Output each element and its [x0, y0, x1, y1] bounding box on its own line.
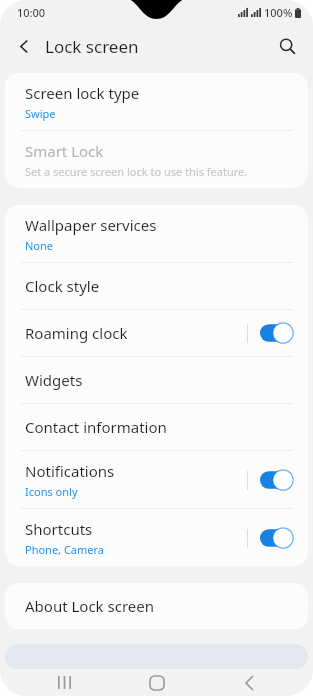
button[interactable]: Roaming clock	[5, 310, 308, 356]
button[interactable]: About Lock screen	[5, 583, 308, 629]
staticText: Widgets	[25, 370, 83, 390]
button[interactable]: Toggle	[260, 469, 294, 491]
staticText: None	[25, 238, 54, 253]
staticText: Icons only	[25, 484, 78, 499]
button[interactable]: Back	[7, 29, 41, 63]
staticText: Phone, Camera	[25, 542, 105, 557]
staticText: Wallpaper services	[25, 215, 157, 235]
button[interactable]: Screen lock type	[5, 73, 308, 130]
staticText: Lock screen	[45, 35, 139, 58]
staticText: Notifications	[25, 461, 115, 481]
staticText: Clock style	[25, 276, 100, 296]
staticText: Smart Lock	[25, 141, 104, 161]
button[interactable]: Widgets	[5, 357, 308, 403]
button[interactable]: Notifications	[5, 451, 308, 508]
button[interactable]: Clock style	[5, 263, 308, 309]
staticText: Screen lock type	[25, 83, 140, 103]
button[interactable]: Recent apps	[36, 669, 92, 696]
button[interactable]: Wallpaper services	[5, 205, 308, 262]
staticText: 10:00	[17, 5, 46, 20]
staticText: Contact information	[25, 417, 167, 437]
staticText: 100%	[264, 5, 293, 20]
button[interactable]: Home	[129, 669, 185, 696]
button[interactable]: Toggle	[260, 322, 294, 344]
button[interactable]: Shortcuts	[5, 509, 308, 566]
staticText: Roaming clock	[25, 323, 128, 343]
staticText: Shortcuts	[25, 519, 93, 539]
button[interactable]: Contact information	[5, 404, 308, 450]
button[interactable]: Smart Lock	[5, 131, 308, 188]
staticText: Swipe	[25, 106, 56, 121]
button[interactable]: Toggle	[260, 527, 294, 549]
staticText: About Lock screen	[25, 596, 154, 616]
button[interactable]: Back	[221, 669, 277, 696]
button[interactable]: Search	[270, 29, 304, 63]
staticText: Set a secure screen lock to use this fea…	[25, 164, 248, 179]
